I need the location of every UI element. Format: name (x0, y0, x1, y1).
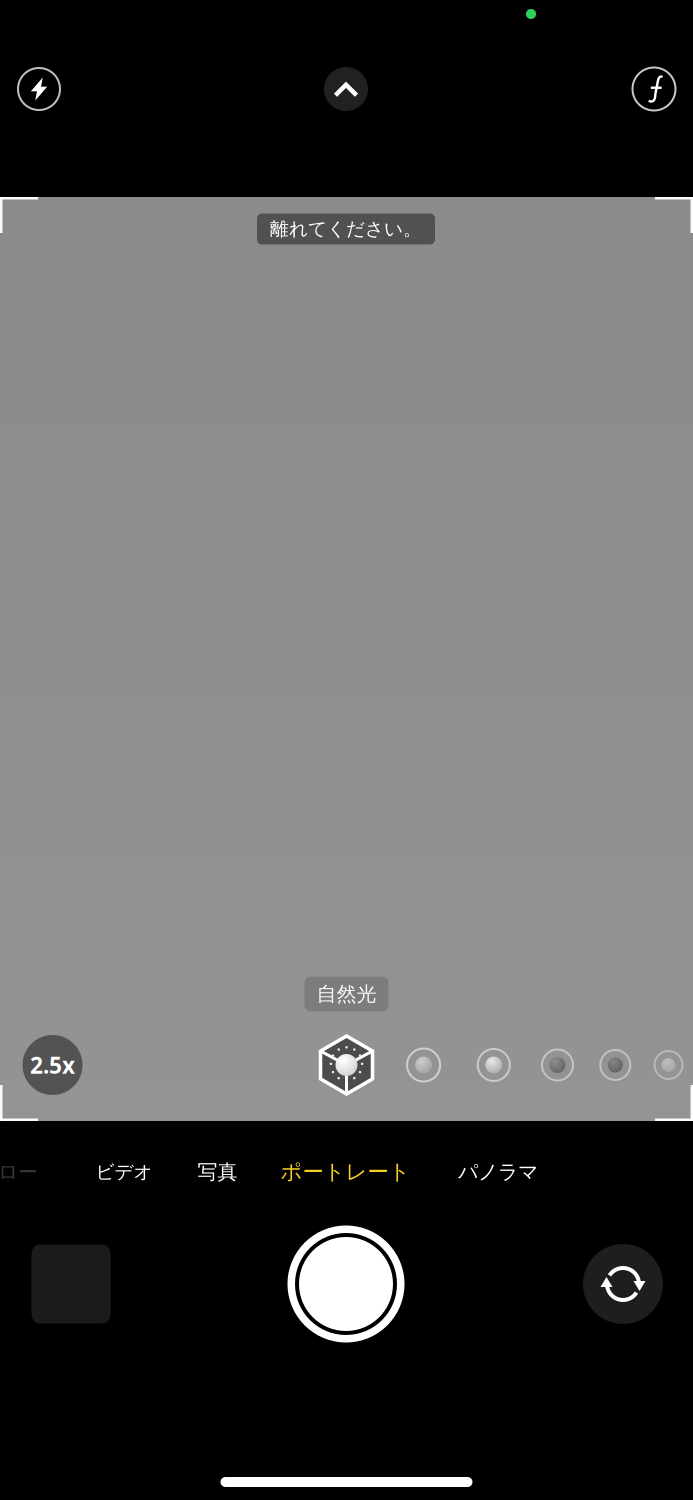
button[interactable]: パノラマ (442, 1146, 554, 1198)
button[interactable]: Take photo (282, 1220, 410, 1348)
button[interactable]: 写真 (181, 1146, 253, 1198)
staticText: パノラマ (458, 1160, 538, 1184)
button[interactable]: Stage Light Mono (589, 1039, 641, 1091)
button[interactable]: Stage Light (531, 1039, 583, 1091)
button[interactable]: Switch camera (578, 1239, 668, 1329)
button[interactable]: Depth control (621, 56, 687, 122)
button[interactable]: 2.5x zoom (17, 1030, 87, 1100)
button[interactable]: Studio Light (398, 1039, 450, 1091)
staticText: 2.5x (30, 1050, 75, 1080)
staticText: 自然光 (316, 982, 376, 1006)
button[interactable]: Contour Light (468, 1039, 520, 1091)
staticText: 写真 (197, 1160, 237, 1184)
staticText: ポートレート (280, 1159, 410, 1185)
staticText: スロー (0, 1160, 38, 1184)
staticText: ビデオ (95, 1160, 152, 1183)
button[interactable]: Natural Light (312, 1031, 380, 1099)
button[interactable]: ポートレート (264, 1145, 426, 1199)
staticText: 離れてください。 (270, 217, 422, 240)
button[interactable]: Photo library (31, 1244, 110, 1323)
button[interactable]: Flash (6, 56, 72, 122)
button[interactable]: More camera controls (313, 56, 379, 122)
button[interactable]: High-Key Light Mono (642, 1039, 693, 1091)
button[interactable]: ビデオ (79, 1146, 168, 1197)
